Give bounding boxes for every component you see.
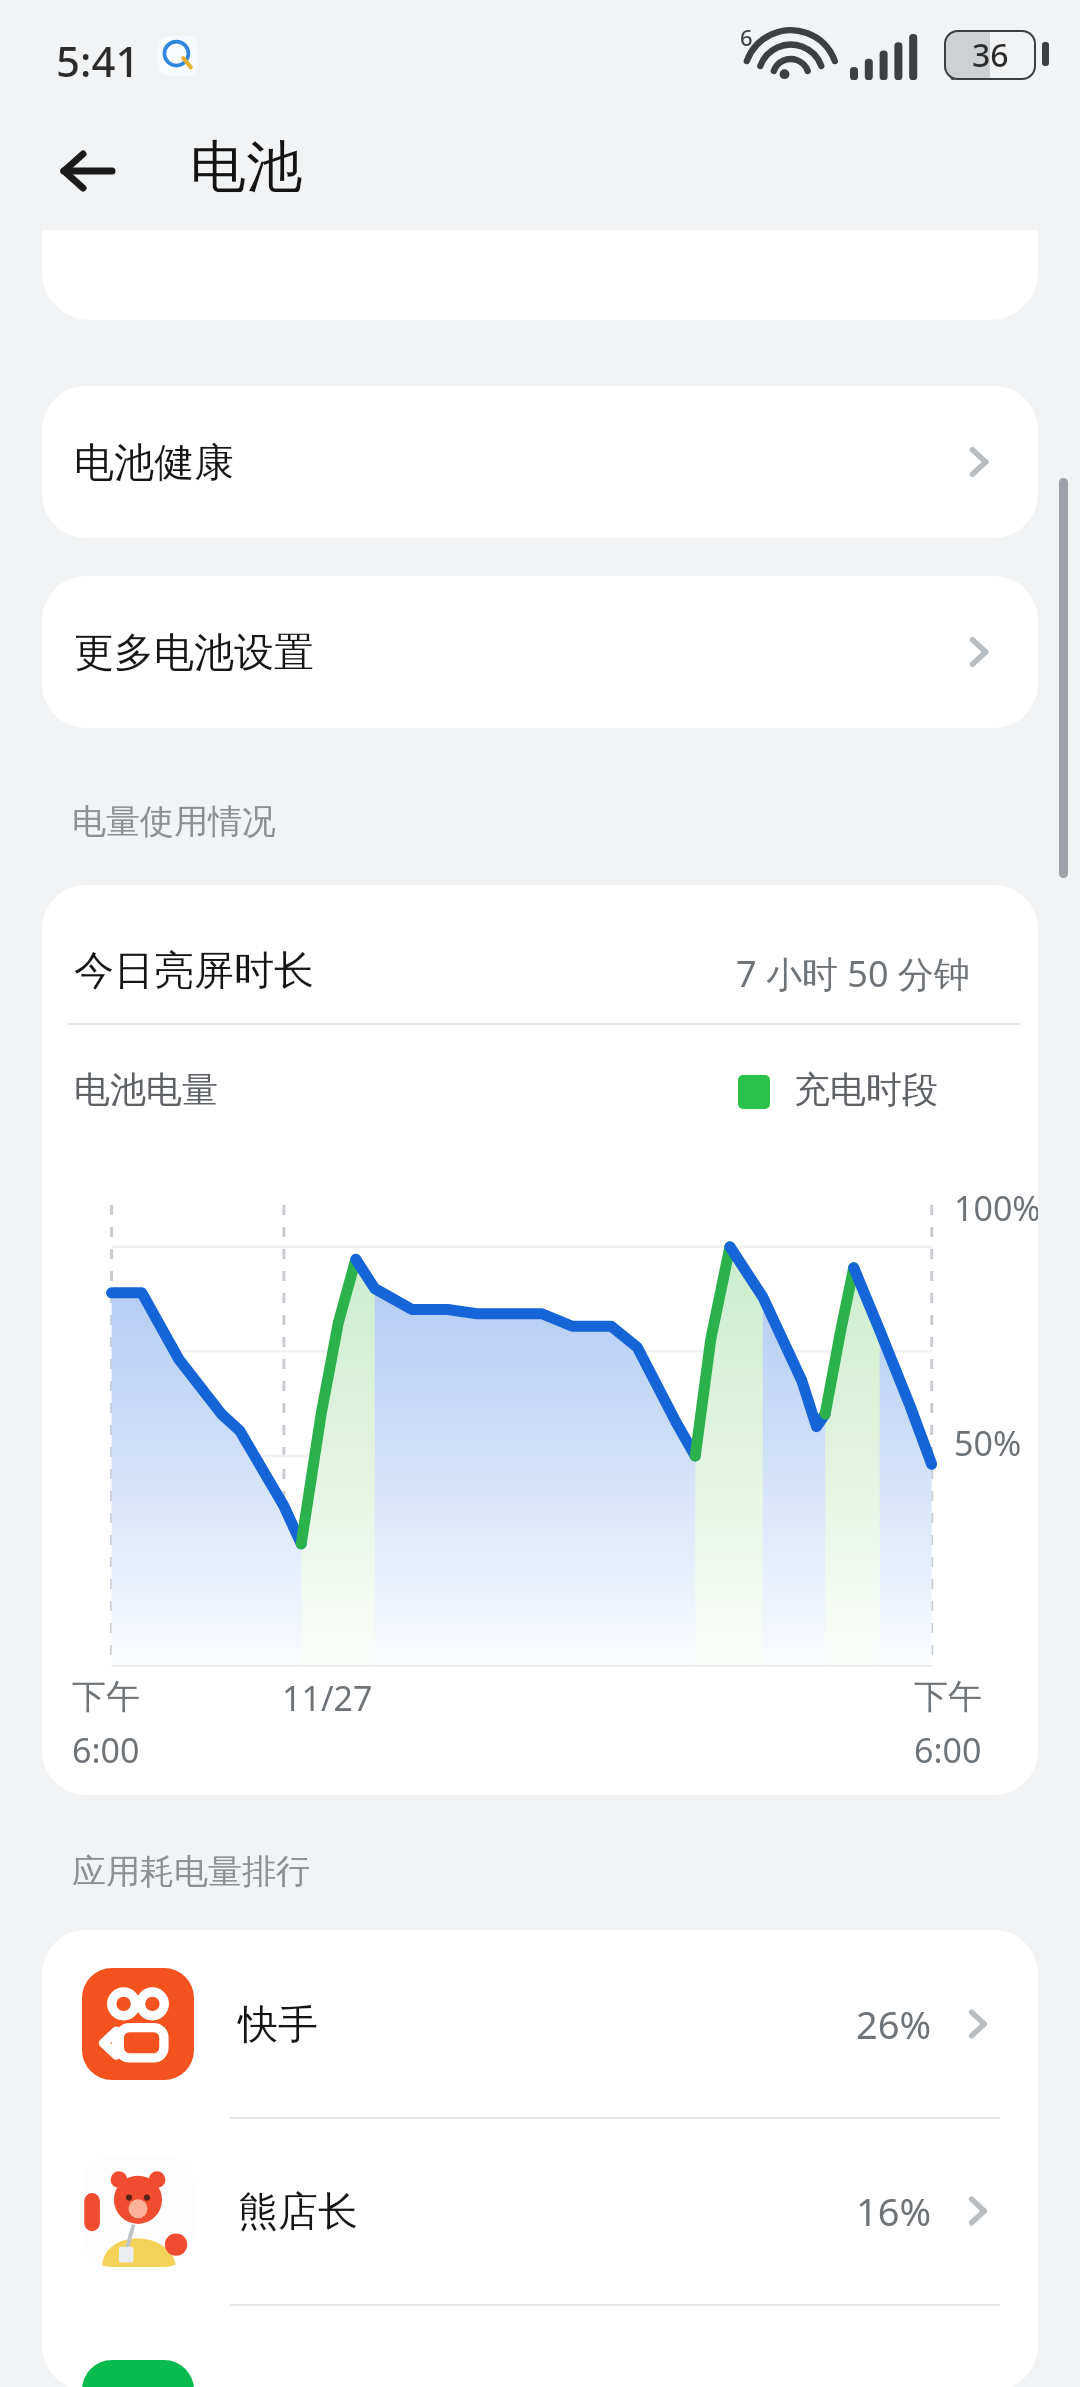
- staticText: 电量使用情况: [72, 800, 276, 843]
- staticText: 6: [740, 22, 753, 52]
- staticText: 7 小时 50 分钟: [736, 949, 970, 998]
- staticText: 26%: [856, 1998, 932, 2050]
- staticText: 显示电量百分比: [76, 190, 342, 230]
- button[interactable]: 熊店长: [42, 2117, 1038, 2304]
- button[interactable]: 显示电量百分比: [42, 190, 1038, 320]
- staticText: 电池健康: [74, 437, 234, 487]
- staticText: 熊店长: [238, 2186, 358, 2236]
- staticText: 电池电量: [74, 1067, 218, 1112]
- staticText: 更多电池设置: [74, 627, 314, 677]
- button[interactable]: Back: [44, 128, 130, 214]
- staticText: 今日亮屏时长: [74, 945, 314, 995]
- staticText: 100%: [954, 1185, 1038, 1231]
- button[interactable]: 电池健康: [42, 386, 1038, 538]
- button[interactable]: 更多电池设置: [42, 576, 1038, 728]
- staticText: 下午: [72, 1675, 140, 1718]
- staticText: 电池: [190, 132, 302, 203]
- staticText: 50%: [954, 1420, 1022, 1466]
- staticText: 16%: [856, 2185, 932, 2237]
- staticText: 5:41: [56, 32, 140, 89]
- button[interactable]: 快手: [42, 1930, 1038, 2117]
- staticText: 应用耗电量排行: [72, 1850, 310, 1893]
- staticText: 11/27: [282, 1675, 373, 1721]
- staticText: 36: [972, 33, 1009, 77]
- staticText: 6:00: [72, 1727, 140, 1773]
- staticText: 6:00: [914, 1727, 982, 1773]
- staticText: 下午: [914, 1675, 982, 1718]
- staticText: 充电时段: [794, 1067, 938, 1112]
- staticText: 快手: [238, 1999, 318, 2049]
